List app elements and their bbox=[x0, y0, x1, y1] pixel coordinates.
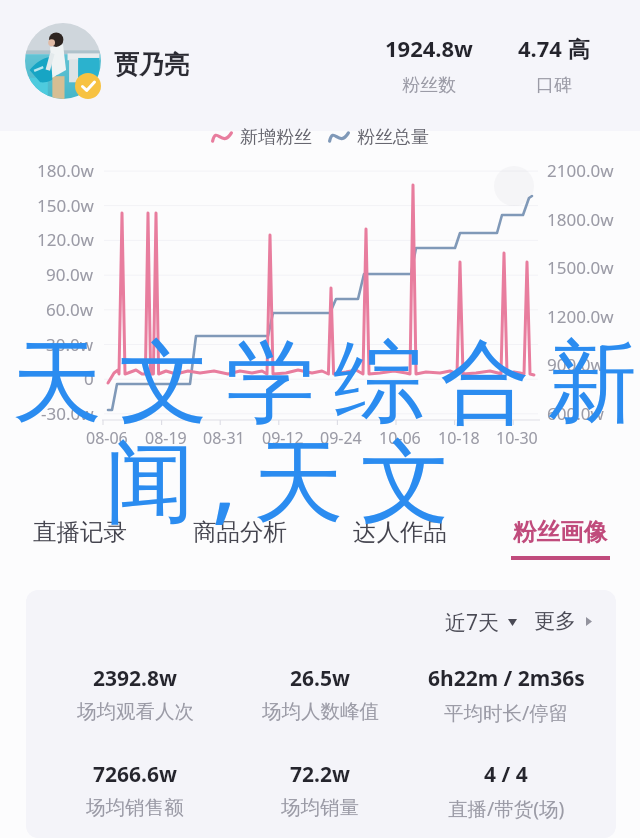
button[interactable]: 4 / 4 bbox=[413, 760, 599, 822]
staticText: 10-18 bbox=[438, 427, 480, 449]
staticText: 直播/带货(场) bbox=[448, 795, 565, 822]
staticText: 平均时长/停留 bbox=[444, 699, 569, 726]
staticText: 150.0w bbox=[37, 194, 94, 217]
staticText: 粉丝数 bbox=[402, 74, 456, 97]
button[interactable]: 商品分析 bbox=[160, 495, 320, 573]
staticText: 72.2w bbox=[290, 760, 350, 789]
staticText: 900.0w bbox=[547, 353, 604, 376]
button[interactable]: 2392.8w bbox=[42, 664, 228, 724]
button[interactable]: 贾乃亮 头像 bbox=[25, 23, 101, 99]
button[interactable]: 26.5w bbox=[227, 664, 413, 724]
staticText: 30.0w bbox=[46, 333, 94, 356]
staticText: 2100.0w bbox=[547, 159, 614, 182]
staticText: 更多 bbox=[534, 608, 576, 634]
staticText: 贾乃亮 bbox=[114, 49, 189, 80]
button[interactable]: 72.2w bbox=[227, 760, 413, 820]
staticText: 4 / 4 bbox=[484, 760, 528, 789]
staticText: 场均销售额 bbox=[86, 795, 184, 820]
staticText: 10-30 bbox=[496, 427, 538, 449]
button[interactable]: 新增粉丝 bbox=[212, 126, 312, 149]
staticText: 1200.0w bbox=[547, 305, 614, 328]
button[interactable]: 粉丝总量 bbox=[329, 126, 429, 149]
staticText: 1924.8w bbox=[385, 33, 473, 63]
staticText: 26.5w bbox=[290, 664, 350, 693]
staticText: 6h22m / 2m36s bbox=[428, 664, 585, 693]
staticText: 09-12 bbox=[262, 427, 304, 449]
button[interactable]: 4.74 高 bbox=[494, 33, 614, 97]
staticText: 08-06 bbox=[86, 427, 128, 449]
staticText: 场均销量 bbox=[281, 795, 359, 820]
staticText: 直播记录 bbox=[33, 517, 127, 547]
staticText: 4.74 高 bbox=[518, 33, 590, 63]
staticText: 粉丝总量 bbox=[357, 126, 429, 149]
staticText: -30.0w bbox=[41, 402, 94, 425]
staticText: 1800.0w bbox=[547, 208, 614, 231]
staticText: 600.0w bbox=[547, 402, 604, 425]
button[interactable]: 1924.8w bbox=[369, 33, 489, 97]
staticText: 120.0w bbox=[37, 228, 94, 251]
button[interactable]: 6h22m / 2m36s bbox=[413, 664, 599, 726]
staticText: 1500.0w bbox=[547, 256, 614, 279]
staticText: 7266.6w bbox=[93, 760, 177, 789]
staticText: 场均观看人次 bbox=[77, 699, 194, 724]
staticText: 60.0w bbox=[46, 298, 94, 321]
staticText: 90.0w bbox=[46, 263, 94, 286]
button[interactable]: 直播记录 bbox=[0, 495, 160, 573]
staticText: 达人作品 bbox=[353, 517, 447, 547]
staticText: 闻,天文 bbox=[105, 417, 468, 540]
staticText: 08-31 bbox=[203, 427, 245, 449]
staticText: 09-24 bbox=[320, 427, 362, 449]
button[interactable]: 近7天 bbox=[437, 602, 525, 643]
staticText: 近7天 bbox=[445, 608, 500, 637]
staticText: 粉丝画像 bbox=[513, 517, 607, 547]
staticText: 天文学综合新 bbox=[12, 326, 640, 439]
button[interactable]: 更多 bbox=[526, 602, 600, 640]
staticText: 180.0w bbox=[37, 159, 94, 182]
staticText: 0 bbox=[84, 367, 94, 390]
staticText: 10-06 bbox=[379, 427, 421, 449]
staticText: 新增粉丝 bbox=[240, 126, 312, 149]
staticText: 08-19 bbox=[145, 427, 187, 449]
button[interactable]: 7266.6w bbox=[42, 760, 228, 820]
button[interactable]: 达人作品 bbox=[320, 495, 480, 573]
staticText: 商品分析 bbox=[193, 517, 287, 547]
staticText: 场均人数峰值 bbox=[262, 699, 379, 724]
staticText: 口碑 bbox=[536, 74, 572, 97]
button[interactable]: 粉丝画像 bbox=[480, 495, 640, 573]
staticText: 2392.8w bbox=[93, 664, 177, 693]
